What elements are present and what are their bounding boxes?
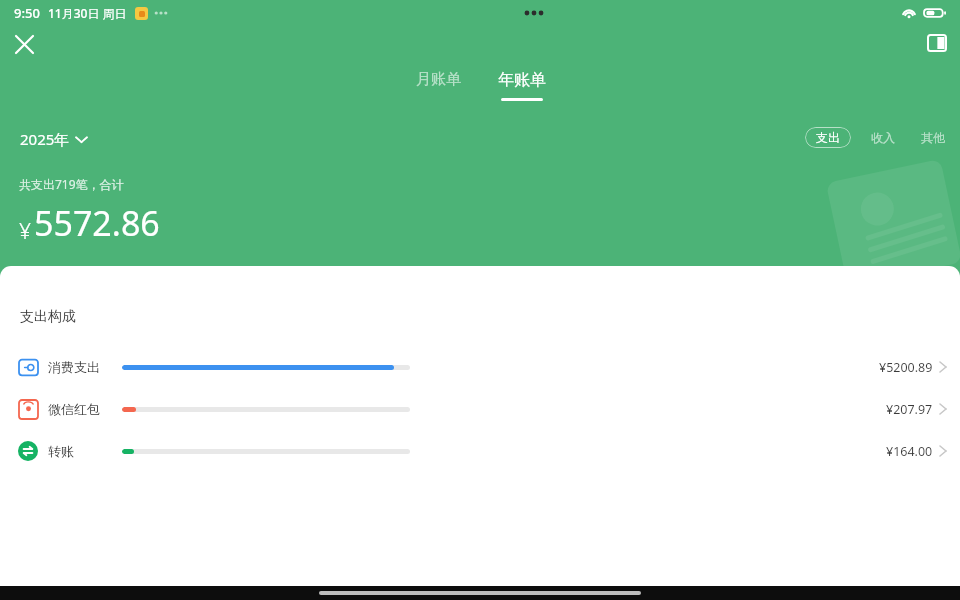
staticText: 月账单	[416, 70, 461, 89]
button[interactable]: 支出	[805, 127, 851, 148]
staticText: 微信红包	[48, 401, 100, 417]
staticText: ¥164.00	[886, 443, 933, 460]
staticText: 收入	[871, 130, 895, 145]
staticText: 消费支出	[48, 359, 100, 375]
button[interactable]: 收入	[865, 126, 901, 149]
staticText: 共支出719笔，合计	[19, 176, 124, 192]
button[interactable]: 转账	[0, 430, 960, 472]
staticText: 其他	[921, 130, 945, 145]
button[interactable]: 其他	[915, 126, 951, 149]
button[interactable]: 消费支出	[0, 346, 960, 388]
staticText: 5572.86	[34, 200, 160, 246]
button[interactable]: 月账单	[397, 70, 479, 110]
staticText: 2025年	[20, 129, 70, 149]
staticText: 11月30日 周日	[48, 5, 127, 21]
button[interactable]: 2025年	[18, 126, 89, 152]
button[interactable]: Split screen	[922, 28, 952, 58]
button[interactable]: Close	[8, 28, 40, 60]
staticText: 年账单	[498, 70, 546, 90]
button[interactable]: 年账单	[481, 70, 563, 110]
staticText: ¥207.97	[886, 401, 933, 418]
staticText: 支出	[816, 130, 840, 145]
staticText: ¥5200.89	[879, 359, 933, 376]
staticText: 支出构成	[20, 308, 76, 326]
staticText: 9:50	[14, 4, 40, 22]
staticText: 转账	[48, 443, 74, 459]
button[interactable]: 微信红包	[0, 388, 960, 430]
staticText: ¥	[19, 217, 31, 246]
